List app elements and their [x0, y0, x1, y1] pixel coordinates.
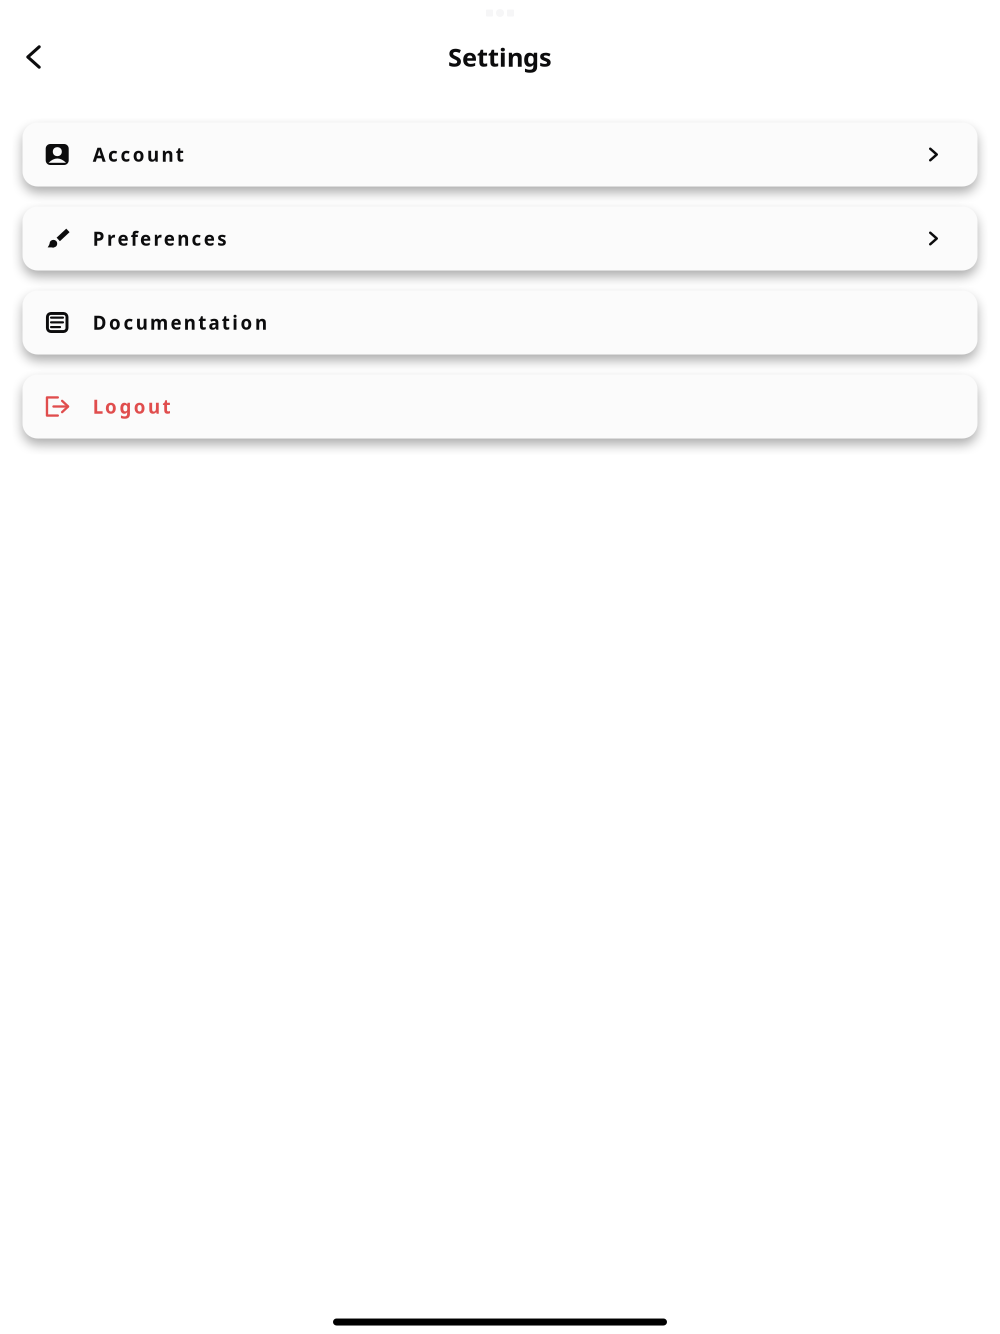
button[interactable]: Logout: [22, 374, 977, 438]
staticText: Account: [93, 142, 184, 167]
button[interactable]: Back: [11, 35, 55, 79]
staticText: Settings: [448, 40, 552, 74]
staticText: Documentation: [93, 310, 267, 335]
staticText: Logout: [93, 394, 170, 419]
button[interactable]: Documentation: [22, 290, 977, 354]
button[interactable]: Preferences: [22, 206, 977, 270]
button[interactable]: Account: [22, 122, 977, 186]
staticText: Preferences: [93, 226, 226, 251]
